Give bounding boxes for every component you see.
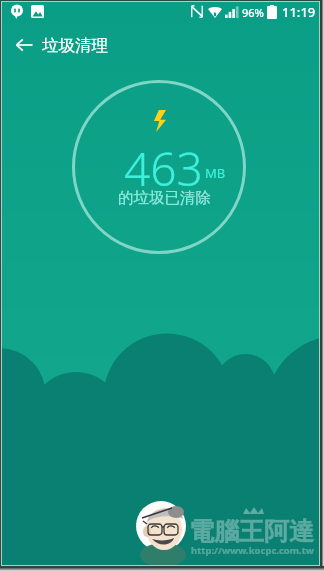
staticText: MB [205,164,226,182]
staticText: http://www.kocpc.com.tw [191,544,314,557]
staticText: 11:19 [282,3,316,21]
staticText: 96% [242,5,264,20]
staticText: 電腦王阿達 [189,516,314,547]
staticText: 的垃圾已清除 [118,188,211,208]
staticText: 463 [124,137,203,200]
button[interactable]: Back [3,24,45,66]
staticText: 垃圾清理 [42,35,108,56]
